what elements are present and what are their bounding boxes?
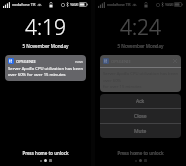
staticText: 5 November Monday [0, 43, 91, 49]
button[interactable]: OPSGENIE [5, 55, 86, 81]
staticText: vodafone TR [12, 2, 36, 7]
button[interactable]: Dismiss notification [172, 58, 178, 64]
staticText: 4:19 [0, 13, 91, 42]
staticText: 4:24 [95, 13, 186, 42]
staticText: Mute [134, 128, 147, 135]
staticText: vodafone TR [107, 2, 131, 7]
staticText: Close [134, 113, 147, 120]
staticText: %68 [70, 2, 78, 7]
button[interactable]: OPSGENIE [100, 55, 181, 92]
staticText: 5 November Monday [95, 43, 186, 49]
staticText: OPSGENIE [16, 59, 36, 64]
staticText: now [75, 59, 83, 64]
staticText: Press home to unlock [0, 150, 91, 156]
staticText: Press home to unlock [95, 150, 186, 156]
staticText: %68 [165, 2, 173, 7]
staticText: OPSGENIE [111, 59, 131, 64]
button[interactable]: Mute [100, 124, 181, 138]
button[interactable]: Ack [100, 94, 181, 108]
staticText: Ack [136, 98, 145, 105]
staticText: Server Apollo CPU utilization has been o… [8, 66, 83, 78]
button[interactable]: Close [100, 109, 181, 123]
